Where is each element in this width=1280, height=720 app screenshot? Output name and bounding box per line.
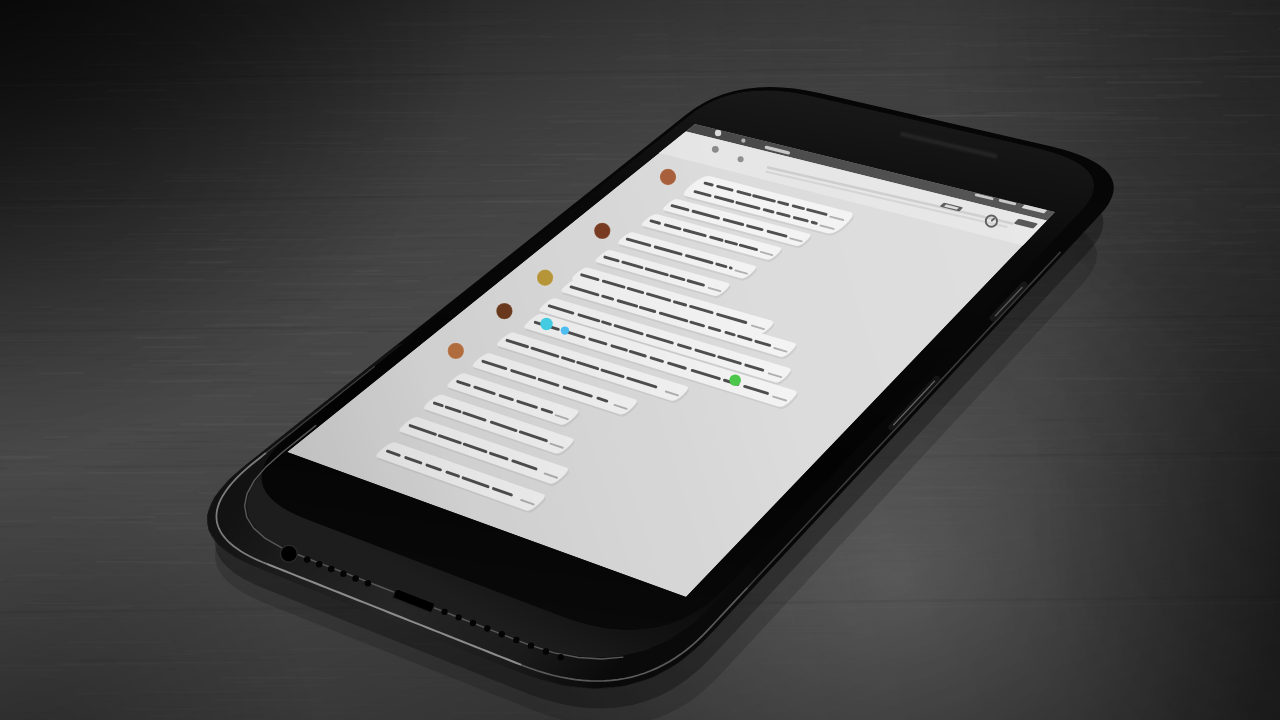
button[interactable]: Black smartphone on a dark wooden table … [0, 0, 1280, 720]
